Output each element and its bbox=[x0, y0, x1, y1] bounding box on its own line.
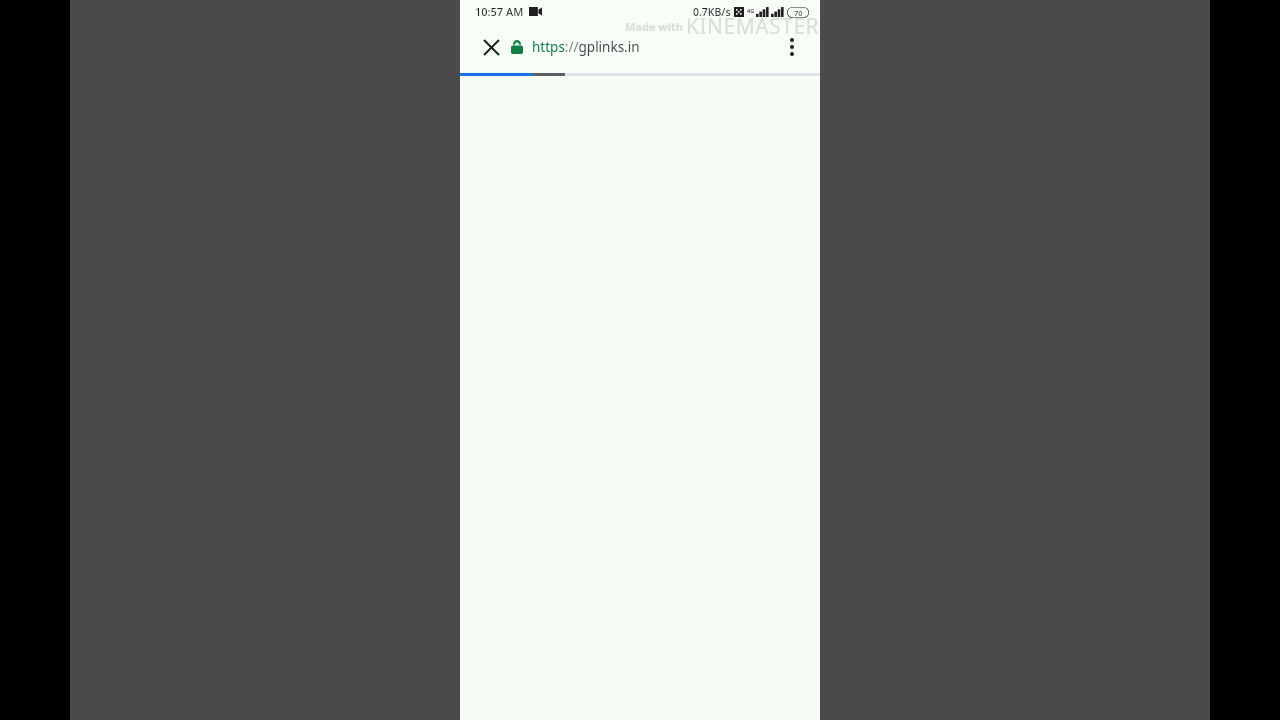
staticText: Made with bbox=[625, 19, 686, 34]
staticText: KINEMASTER bbox=[686, 12, 820, 41]
staticText: 4G bbox=[747, 7, 755, 14]
staticText: 70 bbox=[794, 8, 803, 18]
button[interactable]: More options bbox=[770, 25, 814, 69]
button[interactable]: https://gplinks.in bbox=[508, 27, 768, 67]
staticText: 0.7KB/s bbox=[693, 5, 731, 19]
staticText: 10:57 AM bbox=[475, 4, 524, 19]
staticText: https://gplinks.in bbox=[532, 38, 640, 56]
button[interactable]: Close bbox=[469, 25, 513, 69]
